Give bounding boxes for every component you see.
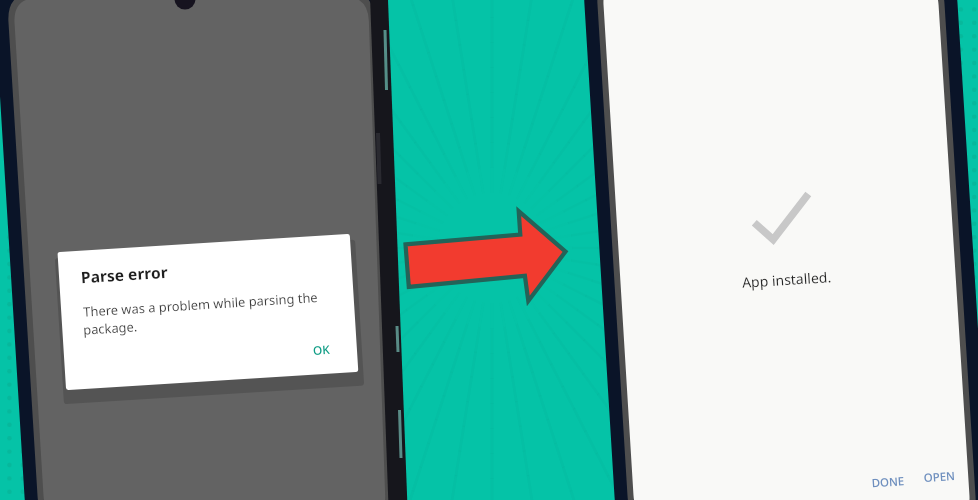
button[interactable]: DONE bbox=[858, 463, 916, 493]
button[interactable]: OK bbox=[292, 332, 344, 364]
button[interactable]: OPEN bbox=[912, 458, 970, 488]
